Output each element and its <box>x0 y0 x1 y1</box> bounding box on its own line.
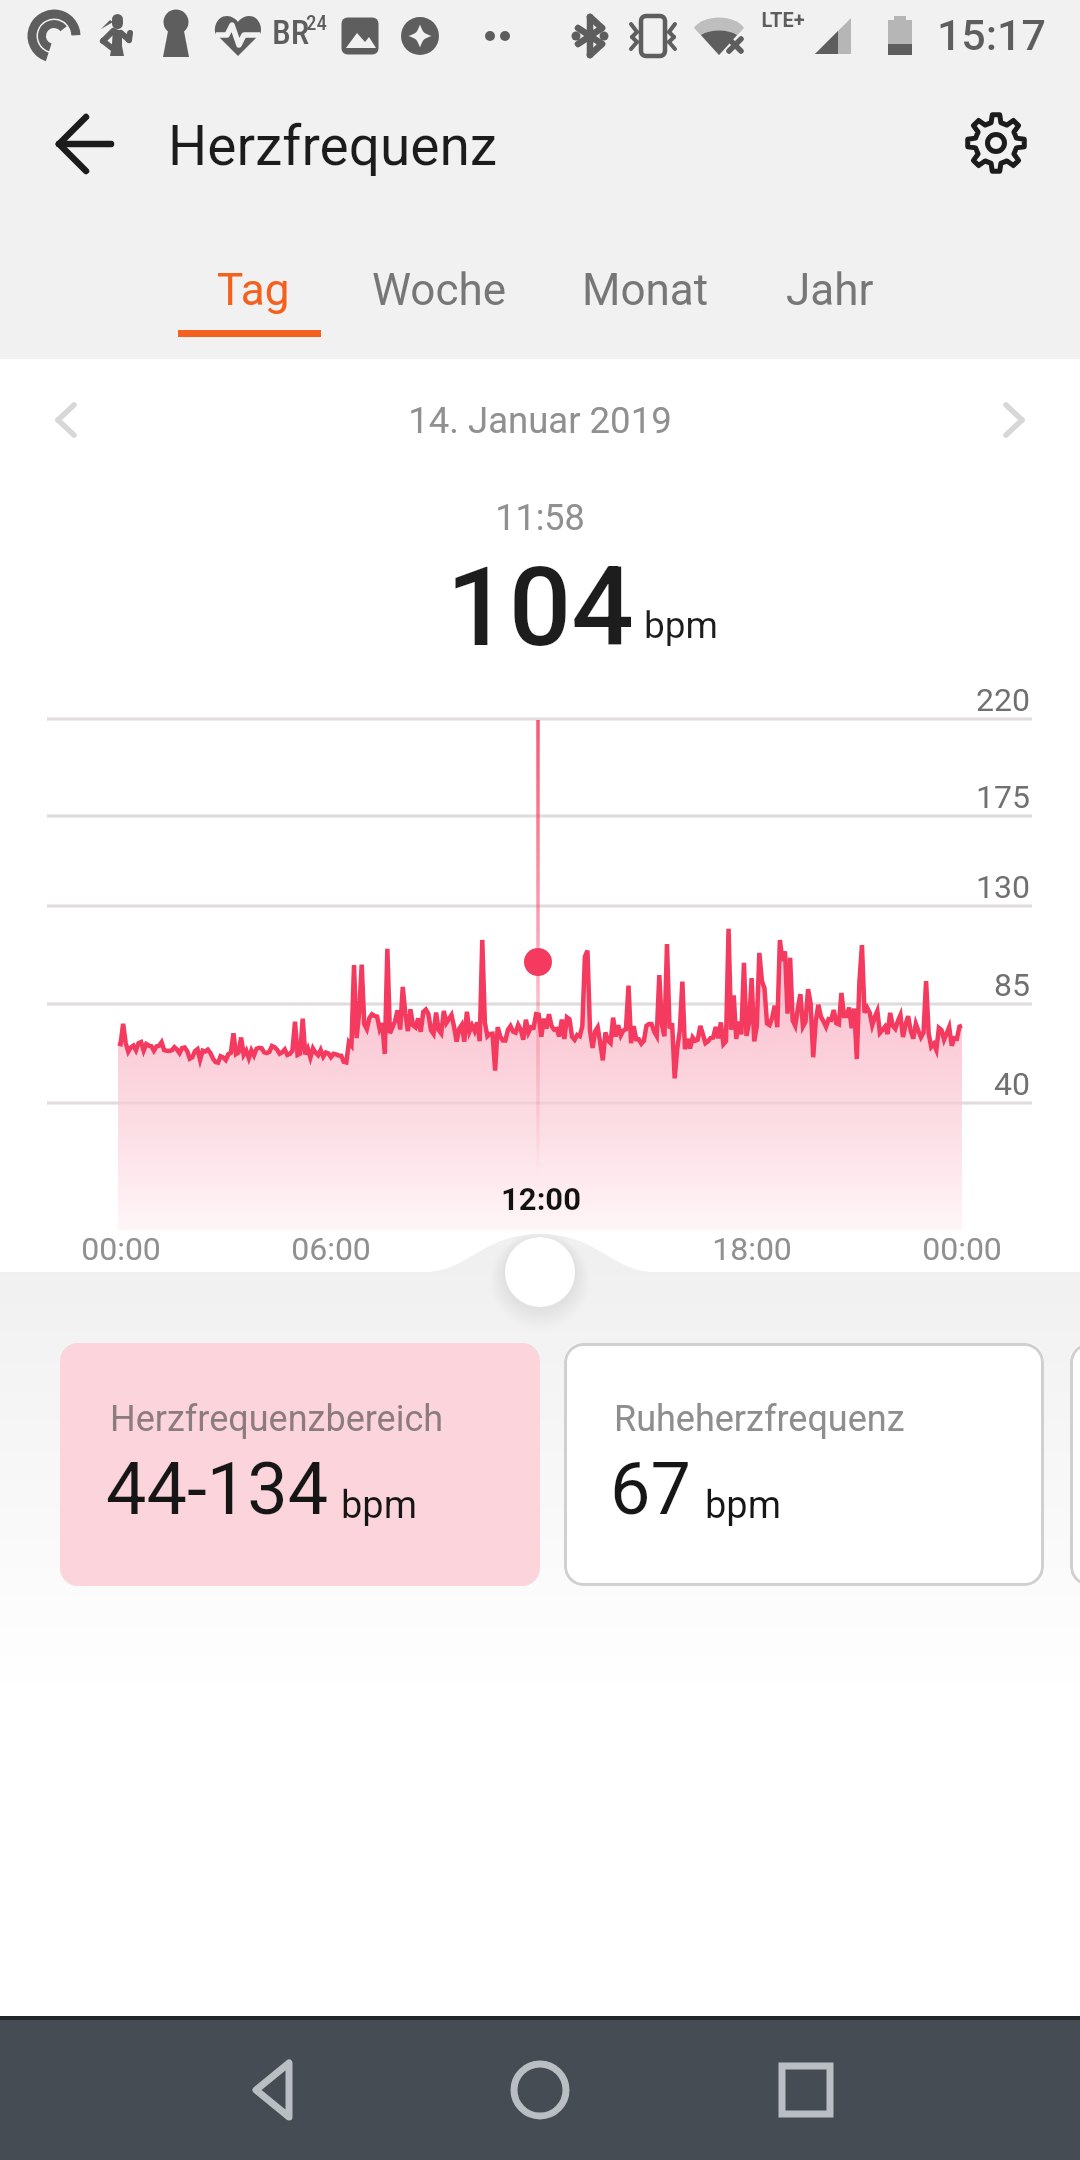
staticText: 00:00 <box>882 1230 1042 1268</box>
button[interactable]: Next day <box>974 380 1054 460</box>
button[interactable]: Previous day <box>26 380 106 460</box>
button[interactable]: Monat <box>552 230 738 350</box>
staticText: LTE+ <box>748 8 818 31</box>
staticText: 12:00 <box>461 1181 621 1217</box>
staticText: Jahr <box>786 264 874 316</box>
staticText: bpm <box>705 1483 781 1528</box>
staticText: Herzfrequenz <box>168 114 498 178</box>
staticText: bpm <box>644 604 718 647</box>
staticText: 104 <box>0 543 1080 672</box>
staticText: 15:17 <box>896 10 1046 60</box>
staticText: Tag <box>217 264 290 316</box>
button[interactable]: Back <box>215 2016 335 2160</box>
button[interactable]: Zeitpunkt wählen <box>505 1237 575 1307</box>
button[interactable]: Woche <box>346 230 532 350</box>
staticText: 175 <box>880 778 1030 816</box>
staticText: Herzfrequenzbereich <box>110 1398 444 1440</box>
staticText: Ruheherzfrequenz <box>614 1398 905 1440</box>
staticText: BR <box>272 12 310 52</box>
staticText: 18:00 <box>672 1230 832 1268</box>
staticText: 85 <box>880 966 1030 1004</box>
button[interactable]: Tag <box>160 230 346 350</box>
button[interactable]: Herzfrequenzbereich <box>60 1343 540 1586</box>
staticText: 44-134 <box>106 1447 329 1531</box>
button[interactable]: Back <box>30 89 140 199</box>
staticText: 67 <box>610 1447 691 1531</box>
button[interactable]: Ruheherzfrequenz <box>564 1343 1044 1586</box>
staticText: 11:58 <box>0 497 1080 539</box>
button[interactable]: Jahr <box>737 230 923 350</box>
staticText: 130 <box>880 868 1030 906</box>
button[interactable]: Home <box>480 2016 600 2160</box>
staticText: 220 <box>880 681 1030 719</box>
button[interactable]: Recent apps <box>746 2016 866 2160</box>
staticText: Monat <box>582 264 709 316</box>
staticText: 14. Januar 2019 <box>0 399 1080 442</box>
staticText: bpm <box>341 1483 417 1528</box>
staticText: 24 <box>306 11 327 36</box>
button[interactable]: Settings <box>946 93 1046 193</box>
staticText: Woche <box>372 264 507 316</box>
staticText: 40 <box>880 1065 1030 1103</box>
staticText: 06:00 <box>251 1230 411 1268</box>
staticText: 00:00 <box>41 1230 201 1268</box>
